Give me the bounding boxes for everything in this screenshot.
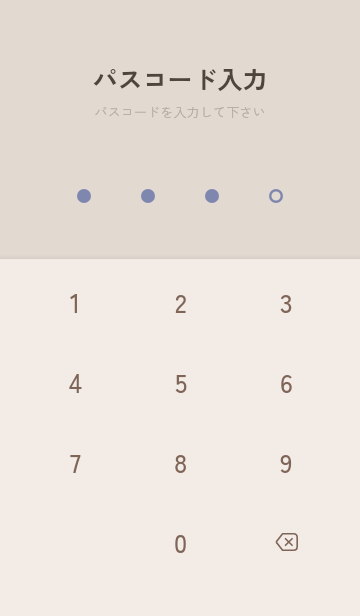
staticText: 9 bbox=[280, 443, 293, 481]
button[interactable]: 8 bbox=[133, 422, 229, 502]
staticText: パスコード入力 bbox=[92, 60, 268, 96]
other: Backspace bbox=[266, 522, 306, 562]
button[interactable]: 6 bbox=[238, 342, 334, 422]
button[interactable]: 4 bbox=[27, 342, 123, 422]
staticText: 7 bbox=[70, 443, 81, 481]
button[interactable]: 0 bbox=[133, 502, 229, 582]
button[interactable]: Backspace bbox=[238, 502, 334, 582]
staticText: 2 bbox=[175, 283, 187, 321]
button[interactable]: 3 bbox=[238, 262, 334, 342]
button[interactable]: 1 bbox=[27, 262, 123, 342]
staticText: パスコードを入力して下さい bbox=[94, 102, 266, 121]
staticText: 0 bbox=[174, 523, 188, 561]
button[interactable]: 5 bbox=[133, 342, 229, 422]
staticText: 5 bbox=[175, 363, 188, 401]
staticText: 3 bbox=[280, 283, 293, 321]
button[interactable]: 7 bbox=[27, 422, 123, 502]
staticText: 6 bbox=[280, 363, 293, 401]
staticText: 4 bbox=[69, 363, 82, 401]
staticText: 8 bbox=[174, 443, 188, 481]
button[interactable]: 9 bbox=[238, 422, 334, 502]
staticText: 1 bbox=[70, 283, 81, 321]
button[interactable]: 2 bbox=[133, 262, 229, 342]
